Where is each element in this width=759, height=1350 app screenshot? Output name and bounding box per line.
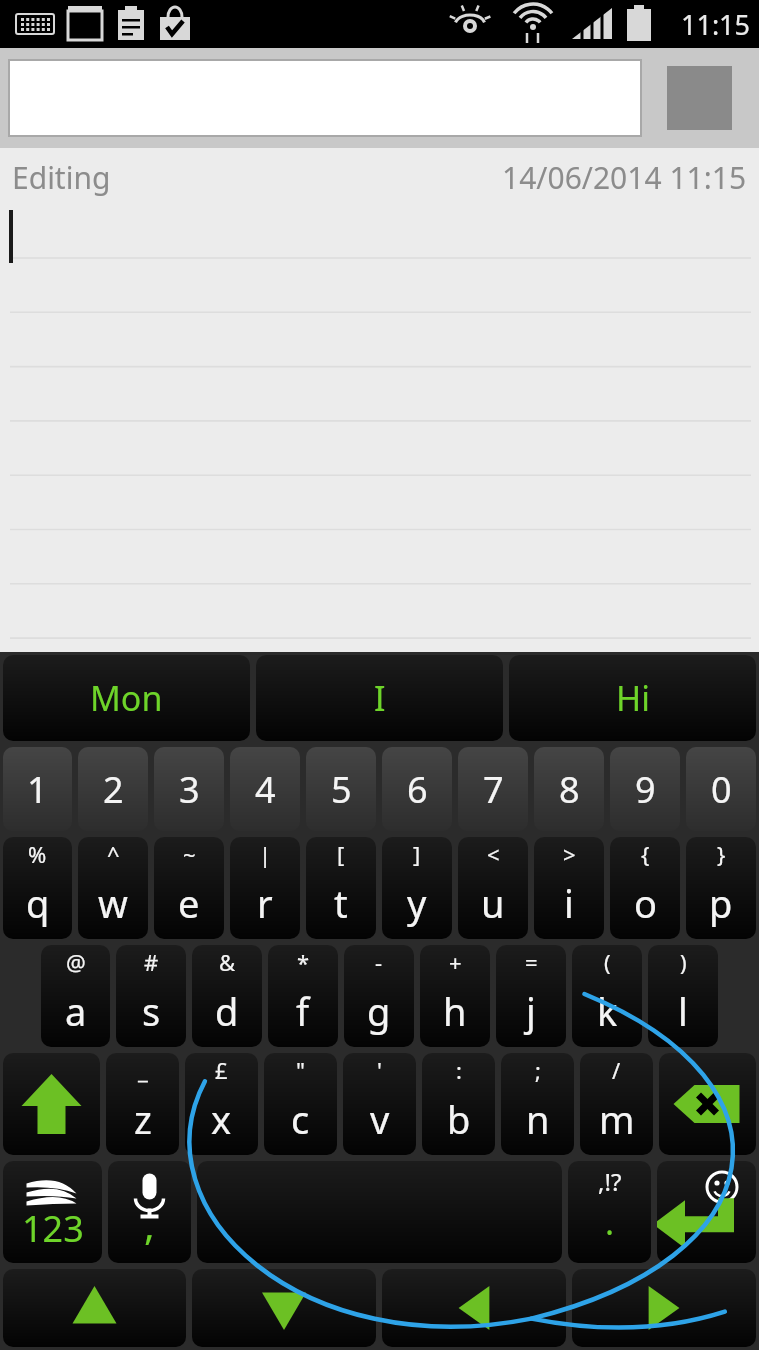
staticText: b [447, 1093, 471, 1145]
button[interactable]: ] [382, 837, 452, 939]
button[interactable]: ) [648, 945, 718, 1047]
staticText: = [525, 947, 538, 977]
staticText: 14/06/2014 11:15 [502, 157, 747, 198]
staticText: > [563, 839, 576, 869]
button[interactable]: = [496, 945, 566, 1047]
staticText: * [297, 947, 310, 977]
button[interactable]: Move right [572, 1269, 756, 1347]
staticText: # [144, 947, 159, 977]
button[interactable]: ~ [154, 837, 224, 939]
button[interactable]: 8 [534, 747, 604, 831]
staticText: w [98, 877, 128, 929]
staticText: / [612, 1055, 621, 1085]
staticText: r [257, 877, 273, 929]
staticText: . [605, 1199, 615, 1245]
button[interactable]: 7 [458, 747, 528, 831]
button[interactable]: _ [106, 1053, 179, 1155]
staticText: ; [535, 1055, 541, 1085]
button[interactable]: Backspace [659, 1053, 756, 1155]
button[interactable]: } [686, 837, 756, 939]
staticText: l [678, 985, 688, 1037]
staticText: 7 [483, 765, 504, 814]
button[interactable]: Shift [3, 1053, 100, 1155]
button[interactable]: / [580, 1053, 653, 1155]
staticText: 4 [255, 765, 276, 814]
staticText: 3 [179, 765, 200, 814]
staticText: f [296, 985, 310, 1037]
button[interactable]: @ [41, 945, 110, 1047]
button[interactable]: ^ [78, 837, 148, 939]
staticText: i [564, 877, 574, 929]
button[interactable]: # [116, 945, 186, 1047]
button[interactable]: % [3, 837, 72, 939]
staticText: z [134, 1093, 152, 1145]
button[interactable]: 5 [306, 747, 376, 831]
button[interactable]: ; [501, 1053, 574, 1155]
button[interactable]: { [610, 837, 680, 939]
staticText: a [65, 985, 87, 1037]
button[interactable]: Enter [657, 1161, 756, 1263]
staticText: 0 [711, 765, 732, 814]
staticText: 11:15 [681, 6, 751, 43]
button[interactable]: ,!? [568, 1161, 651, 1263]
staticText: s [142, 985, 161, 1037]
staticText: } [717, 839, 726, 869]
button[interactable]: | [230, 837, 300, 939]
staticText: { [641, 839, 650, 869]
staticText: 123 [22, 1204, 84, 1253]
staticText: ' [377, 1055, 382, 1085]
staticText: I [374, 675, 386, 721]
staticText: [ [337, 839, 345, 869]
button[interactable]: * [268, 945, 338, 1047]
button[interactable]: + [420, 945, 490, 1047]
button[interactable]: ( [572, 945, 642, 1047]
staticText: < [487, 839, 500, 869]
staticText: @ [66, 947, 86, 977]
staticText: Editing [12, 157, 111, 198]
staticText: 5 [331, 765, 352, 814]
button[interactable]: 0 [686, 747, 756, 831]
staticText: x [211, 1093, 232, 1145]
staticText: 2 [103, 765, 124, 814]
button[interactable]: 1 [3, 747, 72, 831]
button[interactable]: Voice input [108, 1161, 191, 1263]
staticText: " [296, 1055, 305, 1085]
staticText: | [259, 839, 272, 869]
button[interactable]: Hi [509, 655, 756, 741]
button[interactable]: > [534, 837, 604, 939]
button[interactable]: Space [197, 1161, 562, 1263]
button[interactable]: " [264, 1053, 337, 1155]
button[interactable]: 2 [78, 747, 148, 831]
button[interactable]: < [458, 837, 528, 939]
button[interactable]: & [192, 945, 262, 1047]
button[interactable]: £ [185, 1053, 258, 1155]
staticText: ( [604, 947, 611, 977]
button[interactable]: I [256, 655, 503, 741]
button[interactable]: Move left [382, 1269, 566, 1347]
staticText: h [443, 985, 467, 1037]
button[interactable]: 9 [610, 747, 680, 831]
button[interactable]: Symbols 123 [3, 1161, 102, 1263]
staticText: v [370, 1093, 390, 1145]
staticText: 91 [70, 9, 95, 38]
staticText: d [215, 985, 239, 1037]
button[interactable]: Move down [192, 1269, 376, 1347]
staticText: £ [215, 1055, 228, 1085]
staticText: + [449, 947, 462, 977]
button[interactable]: : [422, 1053, 495, 1155]
staticText: q [26, 877, 50, 929]
staticText: ) [680, 947, 687, 977]
button[interactable]: 3 [154, 747, 224, 831]
button[interactable]: 4 [230, 747, 300, 831]
staticText: _ [138, 1055, 148, 1085]
button[interactable]: 6 [382, 747, 452, 831]
staticText: m [599, 1093, 635, 1145]
button[interactable]: - [344, 945, 414, 1047]
button[interactable]: Move up [3, 1269, 186, 1347]
button[interactable]: [ [306, 837, 376, 939]
button[interactable]: Mon [3, 655, 250, 741]
button[interactable]: ' [343, 1053, 416, 1155]
staticText: 8 [559, 765, 580, 814]
